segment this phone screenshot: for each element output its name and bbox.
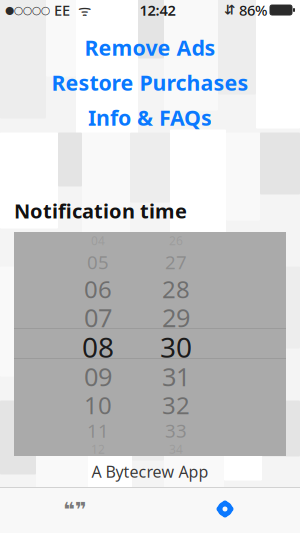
staticText: EE xyxy=(50,0,70,20)
staticText: Restore Purchases xyxy=(51,68,248,97)
staticText: ●○○○○ xyxy=(5,4,50,16)
staticText: 29 xyxy=(162,301,190,334)
staticText: 27 xyxy=(165,250,187,274)
staticText: 09 xyxy=(84,360,112,393)
staticText: 10 xyxy=(84,389,112,421)
staticText: 26 xyxy=(169,232,183,248)
button[interactable]: Restore Purchases xyxy=(0,65,300,100)
button[interactable]: Remove Ads xyxy=(0,30,300,65)
staticText: 28 xyxy=(162,273,190,305)
staticText: 12:42 xyxy=(139,0,175,20)
staticText: 34 xyxy=(169,441,183,457)
staticText: 12 xyxy=(91,441,105,457)
staticText: Notification time xyxy=(14,197,187,224)
staticText: 11 xyxy=(87,418,109,443)
staticText: ⇵ xyxy=(224,2,235,17)
staticText: 30 xyxy=(160,328,192,366)
staticText: 33 xyxy=(165,418,187,443)
staticText: 08 xyxy=(82,328,114,366)
staticText: A Bytecrew App xyxy=(91,461,208,482)
staticText: 31 xyxy=(162,360,190,393)
staticText: 06 xyxy=(84,273,112,305)
staticText: 05 xyxy=(87,250,109,274)
button[interactable]: Settings xyxy=(150,488,300,533)
staticText: ᯤ xyxy=(70,0,91,20)
staticText: 32 xyxy=(162,389,190,421)
staticText: 07 xyxy=(84,301,112,334)
staticText: Remove Ads xyxy=(84,33,215,62)
staticText: ❝❞ xyxy=(63,498,87,521)
staticText: Info & FAQs xyxy=(88,103,212,132)
button[interactable]: Info & FAQs xyxy=(0,100,300,135)
staticText: 86% xyxy=(235,0,267,20)
staticText: 04 xyxy=(91,232,105,248)
button[interactable]: Quotes xyxy=(0,488,150,533)
